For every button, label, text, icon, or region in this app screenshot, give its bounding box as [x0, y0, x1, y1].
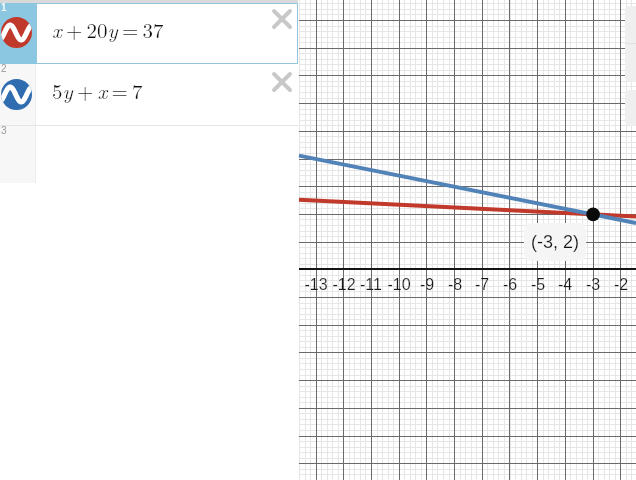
staticText: -12: [328, 276, 360, 294]
staticText: 1: [1, 2, 7, 13]
staticText: -13: [300, 276, 332, 294]
staticText: -4: [549, 276, 581, 294]
staticText: -8: [439, 276, 471, 294]
button[interactable]: Delete expression: [272, 9, 292, 29]
staticText: -11: [355, 276, 387, 294]
staticText: (-3, 2): [531, 232, 580, 252]
button[interactable]: 2: [0, 64, 298, 125]
staticText: 3: [1, 125, 7, 136]
staticText: -5: [522, 276, 554, 294]
button[interactable]: 3: [0, 126, 298, 186]
staticText: -6: [494, 276, 526, 294]
staticText: -2: [605, 276, 636, 294]
staticText: -3: [577, 276, 609, 294]
staticText: 5y + x = 7: [52, 75, 143, 105]
staticText: -10: [383, 276, 415, 294]
staticText: -7: [466, 276, 498, 294]
staticText: 2: [1, 63, 7, 74]
staticText: x + 20y = 37: [52, 14, 164, 44]
button[interactable]: 1: [0, 3, 298, 64]
staticText: -9: [411, 276, 443, 294]
button[interactable]: Delete expression: [272, 72, 292, 92]
button[interactable]: (-3, 2): [524, 223, 586, 261]
